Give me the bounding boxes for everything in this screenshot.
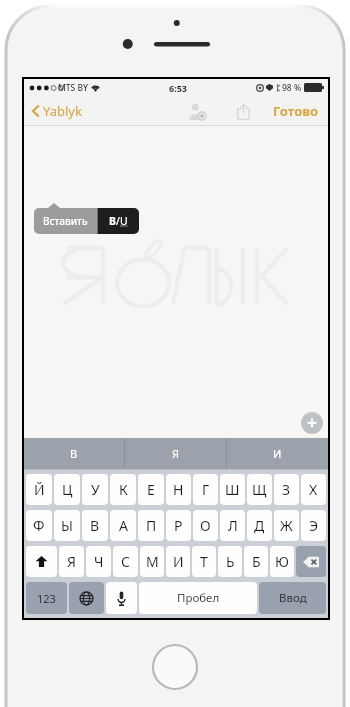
button[interactable]: Ь [218,546,242,577]
button[interactable]: Б [244,546,268,577]
button[interactable]: Shift [26,546,57,577]
staticText: Ю [275,552,289,571]
button[interactable]: Ф [26,510,52,541]
staticText: Ч [94,552,104,571]
staticText: В [90,516,100,535]
button[interactable]: И [227,438,328,469]
staticText: Ж [280,516,293,535]
staticText: Ш [225,480,240,499]
button[interactable]: Add attachment [301,412,323,434]
button[interactable]: Х [301,474,326,505]
staticText: Л [228,516,238,535]
staticText: Е [147,480,155,499]
staticText: О [200,516,211,535]
button[interactable]: Change language [69,582,104,614]
staticText: А [119,516,128,535]
button[interactable]: Ч [86,546,111,577]
staticText: 123 [37,591,56,606]
button[interactable]: Р [166,510,191,541]
button[interactable]: Г [193,474,218,505]
staticText: У [91,480,100,499]
staticText: Ц [62,480,73,499]
button[interactable]: Я [59,546,84,577]
staticText: Ь [226,552,235,571]
staticText: К [119,480,128,499]
button[interactable]: B [98,208,139,234]
staticText: Э [309,516,319,535]
button[interactable]: Н [166,474,191,505]
staticText: Д [254,516,265,535]
staticText: MTS BY [58,82,88,94]
button[interactable]: Готово [270,98,322,124]
button[interactable]: Share [230,98,256,124]
button[interactable]: Ш [220,474,245,505]
button[interactable]: А [110,510,136,541]
staticText: П [146,516,157,535]
button[interactable]: Yablyk [30,99,84,123]
button[interactable]: О [193,510,218,541]
staticText: Вставить [43,214,88,228]
staticText: Yablyk [43,102,82,120]
staticText: Ы [61,516,73,535]
button[interactable]: Л [220,510,245,541]
staticText: Готово [273,102,319,120]
staticText: B [109,214,116,228]
button[interactable]: Д [247,510,272,541]
staticText: 6:53 [169,82,187,94]
button[interactable]: Пробел [139,582,257,614]
staticText: З [282,480,291,499]
staticText: Я [172,446,180,461]
button[interactable]: Э [301,510,326,541]
button[interactable]: У [82,474,108,505]
button[interactable]: Й [26,474,52,505]
staticText: Н [173,480,184,499]
staticText: Пробел [177,590,220,606]
staticText: U [120,214,128,228]
button[interactable]: Вставить [34,208,97,234]
button[interactable]: 123 [26,582,67,614]
button[interactable]: В [82,510,108,541]
button[interactable]: Щ [247,474,272,505]
button[interactable]: Т [192,546,216,577]
button[interactable]: Add contact [184,98,210,124]
button[interactable]: Dictate [106,582,137,614]
staticText: В [70,446,78,461]
button[interactable]: Е [138,474,164,505]
staticText: Ф [33,516,45,535]
staticText: Ввод [279,590,307,606]
staticText: Щ [252,480,267,499]
staticText: И [273,446,282,461]
button[interactable]: Ц [54,474,80,505]
staticText: Я [67,552,76,571]
button[interactable]: П [138,510,164,541]
button[interactable]: Ввод [259,582,326,614]
staticText: И [173,552,184,571]
staticText: Р [174,516,183,535]
button[interactable]: Я [125,438,226,469]
button[interactable]: М [140,546,164,577]
button[interactable]: К [110,474,136,505]
staticText: Т [200,552,208,571]
staticText: / [116,214,120,228]
staticText: Г [202,480,210,499]
staticText: М [146,552,159,571]
button[interactable]: Backspace [296,546,326,577]
button[interactable]: З [274,474,299,505]
button[interactable]: Ж [274,510,299,541]
staticText: Й [34,480,45,499]
button[interactable]: И [166,546,190,577]
staticText: Х [309,480,318,499]
button[interactable]: Ю [270,546,294,577]
staticText: С [121,552,130,571]
button[interactable]: С [113,546,138,577]
button[interactable]: Ы [54,510,80,541]
staticText: 98 % [282,82,302,94]
button[interactable]: В [24,438,124,469]
staticText: Б [252,552,261,571]
